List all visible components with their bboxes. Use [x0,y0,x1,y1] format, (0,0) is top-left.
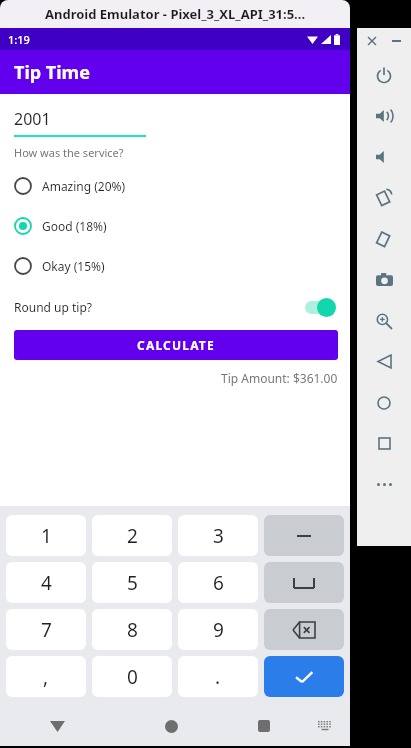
staticText: Android Emulator - Pixel_3_XL_API_31:5..… [45,5,306,23]
button[interactable]: Minimize [388,33,404,49]
staticText: 2 [127,523,138,549]
staticText: 2001 [14,108,51,130]
button[interactable]: Rotate left [357,177,411,218]
button[interactable]: Home [114,706,228,746]
button[interactable]: Volume down [357,136,411,177]
staticText: 0 [127,664,138,690]
staticText: CALCULATE [137,337,215,353]
staticText: How was the service? [14,145,124,160]
button[interactable]: 3 [178,515,258,556]
button[interactable]: Minus [264,515,344,556]
staticText: 6 [213,570,224,596]
button[interactable]: Overview [357,423,411,464]
button[interactable]: Enter [264,656,344,697]
button[interactable]: 2 [92,515,172,556]
staticText: Okay (15%) [42,258,105,274]
button[interactable]: Volume up [357,95,411,136]
button[interactable]: Keyboard [299,706,350,746]
staticText: Round up tip? [14,299,92,315]
button[interactable]: More [357,464,411,505]
button[interactable]: 9 [178,609,258,650]
button[interactable]: Zoom [357,300,411,341]
button[interactable]: Space [264,562,344,603]
button[interactable]: Recents [228,706,299,746]
button[interactable]: 4 [6,562,86,603]
button[interactable]: Okay (15%) [14,246,338,286]
staticText: 1:19 [8,32,30,47]
button[interactable]: Close [364,33,380,49]
button[interactable]: , [6,656,86,697]
staticText: , [43,664,49,690]
button[interactable]: 1 [6,515,86,556]
button[interactable]: Power [357,54,411,95]
staticText: Tip Amount: $361.00 [221,370,338,386]
button[interactable]: Screenshot [357,259,411,300]
button[interactable]: Back [357,341,411,382]
staticText: Good (18%) [42,218,107,234]
button[interactable]: . [178,656,258,697]
button[interactable]: Good (18%) [14,206,338,246]
staticText: 5 [127,570,138,596]
button[interactable]: Backspace [264,609,344,650]
staticText: Amazing (20%) [42,178,126,194]
staticText: 8 [127,617,138,643]
staticText: 7 [41,617,52,643]
staticText: 1 [41,523,52,549]
button[interactable]: 7 [6,609,86,650]
button[interactable]: CALCULATE [14,330,338,360]
button[interactable]: 8 [92,609,172,650]
staticText: 4 [41,570,52,596]
staticText: Tip Time [14,60,90,85]
button[interactable]: Round up tip? [14,290,338,324]
button[interactable]: Back [0,706,114,746]
staticText: 9 [213,617,224,643]
button[interactable]: 0 [92,656,172,697]
button[interactable]: Amazing (20%) [14,166,338,206]
staticText: 3 [213,523,224,549]
button[interactable]: 2001 [14,108,146,137]
staticText: . [215,664,221,690]
button[interactable]: 6 [178,562,258,603]
button[interactable]: Rotate right [357,218,411,259]
button[interactable]: 5 [92,562,172,603]
button[interactable]: Home [357,382,411,423]
